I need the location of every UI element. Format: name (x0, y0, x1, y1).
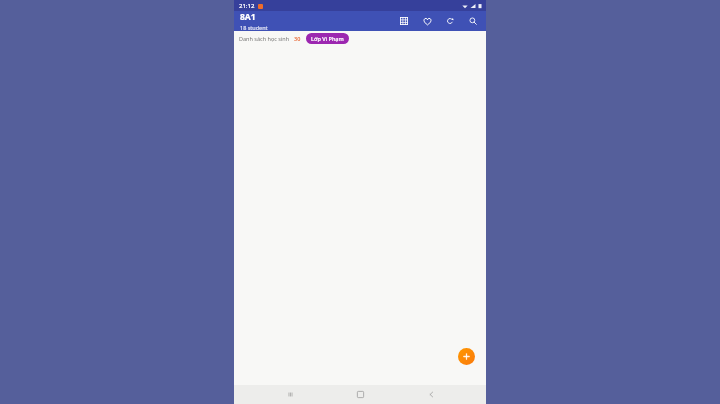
button[interactable]: Back (416, 385, 446, 404)
button[interactable]: Recent apps (275, 385, 305, 404)
staticText: Lớp Vi Phạm (311, 35, 344, 42)
button[interactable]: Grid view (397, 14, 411, 28)
staticText: 18 student (240, 24, 268, 31)
button[interactable]: Sync (443, 14, 457, 28)
staticText: 8A1 (240, 11, 256, 23)
button[interactable]: Search (466, 14, 480, 28)
button[interactable]: Home (345, 385, 375, 404)
button[interactable]: Lớp Vi Phạm (306, 33, 349, 44)
button[interactable]: Add (458, 348, 475, 365)
staticText: 30 (294, 35, 301, 42)
button[interactable]: Favorites (420, 14, 434, 28)
staticText: 21:12 (239, 2, 255, 10)
staticText: Danh sách học sinh (239, 35, 290, 42)
